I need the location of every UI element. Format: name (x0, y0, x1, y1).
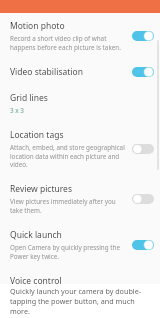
staticText: Record a short video clip of what happen… (10, 34, 126, 52)
button[interactable]: Toggle off (132, 143, 154, 155)
button[interactable]: Toggle on (132, 66, 154, 78)
button[interactable]: Toggle on (132, 30, 154, 42)
staticText: View pictures immediately after you take… (10, 197, 126, 215)
staticText: 3 x 3 (10, 106, 24, 115)
staticText: Attach, embed, and store geographical lo… (10, 143, 126, 169)
staticText: Grid lines (10, 92, 48, 104)
staticText: Quick launch (10, 229, 62, 241)
button[interactable]: Motion photo (0, 13, 160, 59)
button[interactable]: Video stabilisation (0, 59, 160, 85)
button[interactable]: Quickly launch your camera by double-tap… (0, 284, 160, 318)
button[interactable]: Voice control (0, 268, 160, 318)
staticText: Video stabilisation (10, 66, 83, 78)
button[interactable]: Grid lines (0, 85, 160, 122)
button[interactable]: Location tags (0, 122, 160, 176)
staticText: Open Camera by quickly pressing the Powe… (10, 243, 126, 261)
staticText: Review pictures (10, 183, 72, 195)
staticText: Motion photo (10, 20, 65, 32)
button[interactable]: Toggle on (132, 239, 154, 251)
button[interactable]: Toggle off (132, 193, 154, 205)
button[interactable]: Review pictures (0, 176, 160, 222)
staticText: Quickly launch your camera by double-tap… (10, 286, 150, 316)
button[interactable]: Quick launch (0, 222, 160, 268)
staticText: Voice control (10, 275, 62, 287)
button[interactable]: Toggle on (132, 287, 154, 299)
staticText: Take pictures by saying "Smile", "Cheese… (10, 289, 126, 311)
staticText: Location tags (10, 129, 64, 141)
